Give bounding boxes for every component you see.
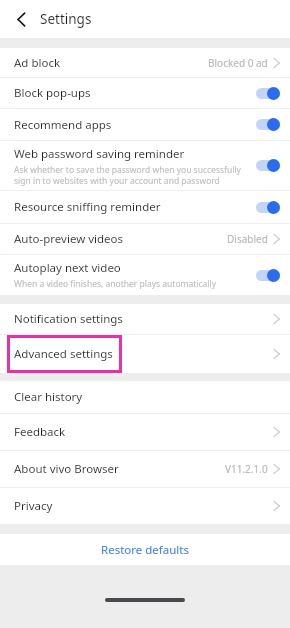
button[interactable]: Auto-preview videos — [0, 224, 290, 254]
button[interactable]: About vivo Browser — [0, 451, 290, 487]
staticText: Clear history — [14, 389, 83, 405]
button[interactable]: Notification settings — [0, 304, 290, 334]
staticText: When a video finishes, another plays aut… — [14, 278, 217, 290]
staticText: Notification settings — [14, 311, 123, 327]
button[interactable]: Autoplay next video — [0, 255, 290, 295]
staticText: V11.2.1.0 — [225, 462, 268, 476]
button[interactable]: Advanced settings — [0, 335, 290, 373]
staticText: Recommend apps — [14, 117, 112, 133]
button[interactable]: Block pop-ups — [0, 78, 290, 108]
staticText: Ask whether to save the password when yo… — [14, 164, 241, 186]
staticText: Privacy — [14, 498, 53, 514]
staticText: Advanced settings — [14, 346, 113, 362]
staticText: Settings — [40, 10, 92, 28]
button[interactable]: Ad block — [0, 48, 290, 77]
staticText: Block pop-ups — [14, 85, 91, 101]
staticText: Resource sniffing reminder — [14, 199, 161, 215]
button[interactable]: Restore defaults — [0, 534, 290, 565]
staticText: Blocked 0 ad — [208, 56, 268, 70]
staticText: Restore defaults — [101, 542, 189, 558]
staticText: Disabled — [227, 232, 268, 246]
button[interactable]: Privacy — [0, 488, 290, 524]
staticText: About vivo Browser — [14, 461, 119, 477]
staticText: Feedback — [14, 424, 66, 440]
button[interactable]: Resource sniffing reminder — [0, 191, 290, 223]
button[interactable]: Web password saving reminder — [0, 141, 290, 190]
button[interactable]: Recommend apps — [0, 109, 290, 140]
button[interactable]: Back — [10, 8, 32, 30]
button[interactable]: Clear history — [0, 381, 290, 413]
staticText: Ad block — [14, 55, 61, 71]
button[interactable]: Feedback — [0, 414, 290, 450]
staticText: Autoplay next video — [14, 260, 121, 276]
staticText: Web password saving reminder — [14, 146, 185, 162]
staticText: Auto-preview videos — [14, 231, 124, 247]
